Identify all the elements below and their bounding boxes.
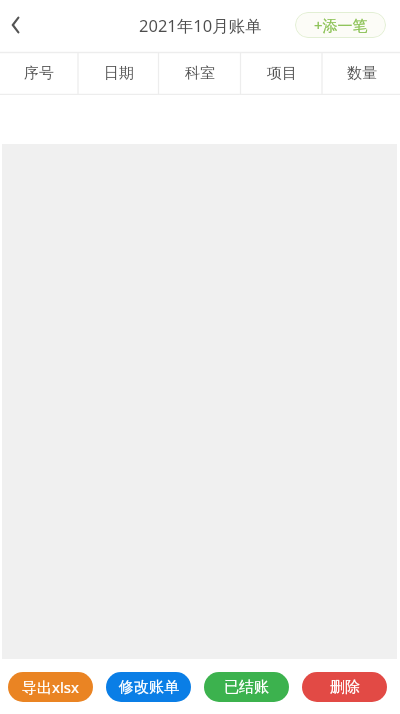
button[interactable]: 已结账 <box>204 672 289 702</box>
button[interactable]: 数量 <box>323 52 400 95</box>
staticText: 序号 <box>24 64 54 83</box>
button[interactable]: 科室 <box>159 52 241 95</box>
button[interactable]: 导出xlsx <box>8 672 93 702</box>
staticText: 已结账 <box>224 678 269 697</box>
staticText: 2021年10月账单 <box>139 14 262 37</box>
button[interactable]: 项目 <box>241 52 323 95</box>
button[interactable]: 日期 <box>78 52 159 95</box>
staticText: 修改账单 <box>119 678 179 697</box>
staticText: 项目 <box>267 64 297 83</box>
button[interactable]: 删除 <box>302 672 387 702</box>
staticText: 数量 <box>347 64 377 83</box>
button[interactable]: 序号 <box>0 52 78 95</box>
staticText: 导出xlsx <box>22 677 79 697</box>
staticText: 日期 <box>104 64 134 83</box>
staticText: 删除 <box>330 678 360 697</box>
staticText: 科室 <box>185 64 215 83</box>
button[interactable]: +添一笔 <box>295 12 386 38</box>
button[interactable]: 修改账单 <box>106 672 191 702</box>
staticText: +添一笔 <box>314 15 368 35</box>
button[interactable]: Back <box>0 9 32 41</box>
